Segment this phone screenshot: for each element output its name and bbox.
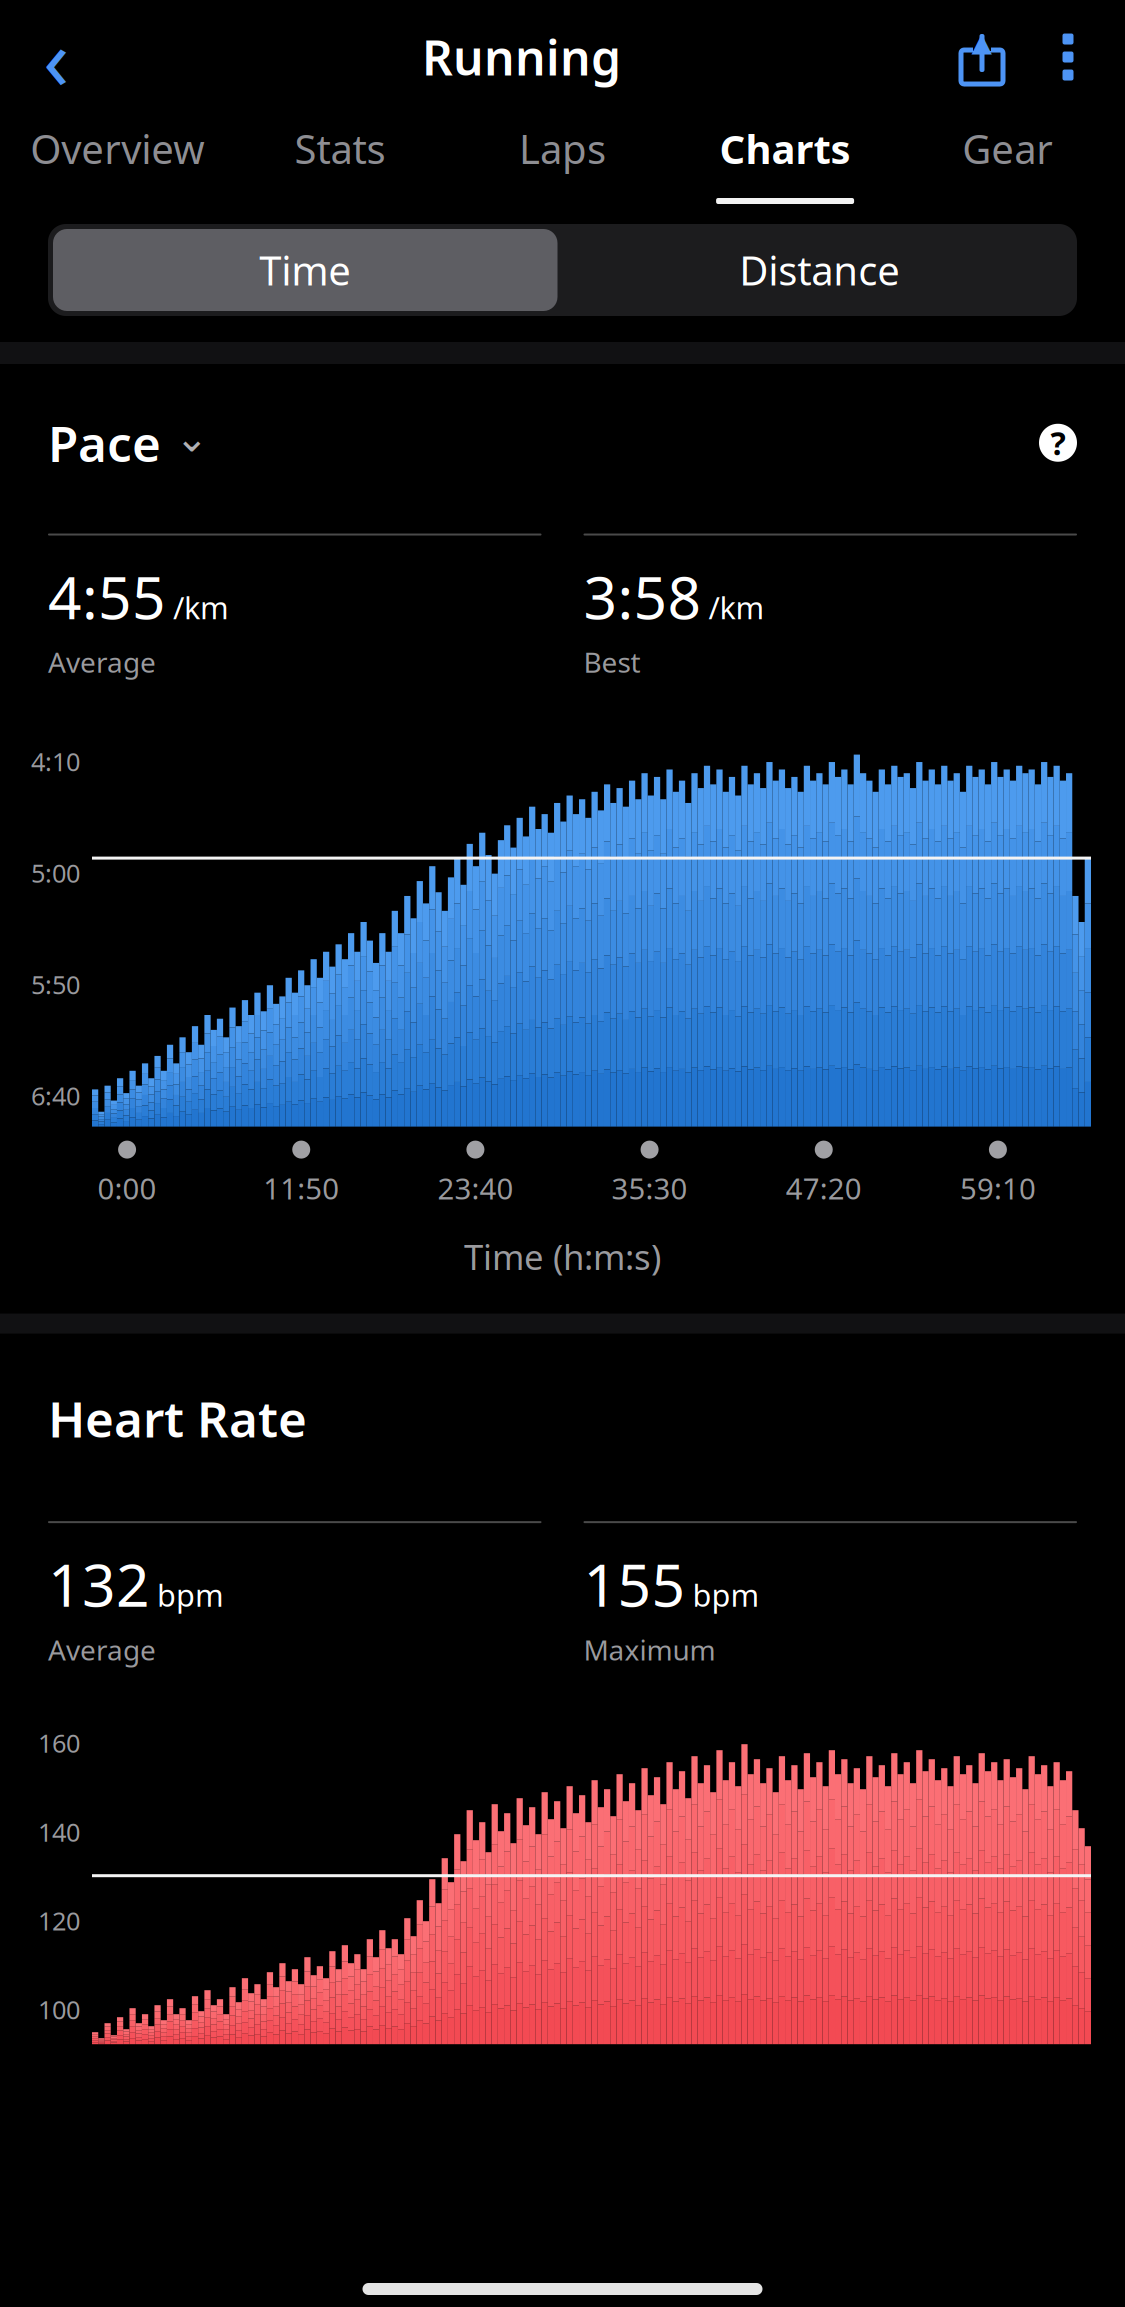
staticText: 47:20	[786, 1169, 862, 1208]
button[interactable]: Laps	[451, 100, 674, 212]
staticText: ⌄	[175, 415, 209, 460]
button[interactable]: Back	[8, 14, 104, 100]
staticText: /km	[173, 587, 229, 628]
button[interactable]: Distance	[562, 224, 1077, 316]
button[interactable]: Pace	[48, 410, 209, 475]
staticText: Distance	[739, 243, 900, 296]
staticText: 155	[583, 1545, 685, 1623]
staticText: Gear	[962, 122, 1053, 175]
staticText: ▲	[971, 27, 992, 57]
staticText: 140	[38, 1815, 80, 1849]
button[interactable]: More options	[1025, 14, 1111, 100]
staticText: Running	[422, 25, 621, 89]
staticText: 5:50	[31, 967, 80, 1001]
button[interactable]: Overview	[6, 100, 229, 212]
staticText: 5:00	[31, 856, 80, 890]
button[interactable]: Gear	[896, 100, 1119, 212]
staticText: Pace	[48, 410, 161, 475]
button[interactable]: Help about pace	[1039, 424, 1077, 462]
staticText: 120	[38, 1904, 80, 1937]
staticText: 11:50	[263, 1169, 339, 1208]
staticText: 0:00	[98, 1169, 157, 1208]
staticText: Overview	[30, 122, 204, 175]
staticText: 59:10	[960, 1169, 1036, 1208]
staticText: 23:40	[437, 1169, 513, 1208]
staticText: bpm	[157, 1575, 224, 1615]
staticText: Stats	[294, 122, 385, 175]
staticText: Time	[259, 243, 351, 296]
staticText: ?	[1050, 421, 1065, 464]
staticText: Average	[48, 1631, 156, 1668]
staticText: 132	[48, 1545, 150, 1623]
staticText: Time (h:m:s)	[464, 1234, 661, 1280]
staticText: Charts	[720, 122, 851, 175]
staticText: ‹	[43, 0, 69, 114]
staticText: Average	[48, 643, 156, 681]
staticText: 3:58	[583, 557, 701, 635]
staticText: 6:40	[31, 1079, 80, 1113]
button[interactable]: Stats	[229, 100, 451, 212]
staticText: Best	[583, 643, 640, 681]
staticText: bpm	[692, 1575, 759, 1615]
staticText: 160	[38, 1726, 80, 1760]
staticText: Laps	[519, 122, 606, 175]
staticText: 35:30	[612, 1169, 688, 1208]
button[interactable]: Charts	[674, 100, 896, 212]
button[interactable]: Time	[48, 224, 562, 316]
staticText: 4:55	[48, 557, 166, 635]
staticText: Maximum	[583, 1631, 715, 1668]
staticText: Heart Rate	[48, 1386, 307, 1451]
button[interactable]: Share	[939, 14, 1025, 100]
staticText: 4:10	[31, 745, 80, 778]
staticText: 100	[38, 1993, 80, 2026]
staticText: /km	[708, 587, 764, 628]
